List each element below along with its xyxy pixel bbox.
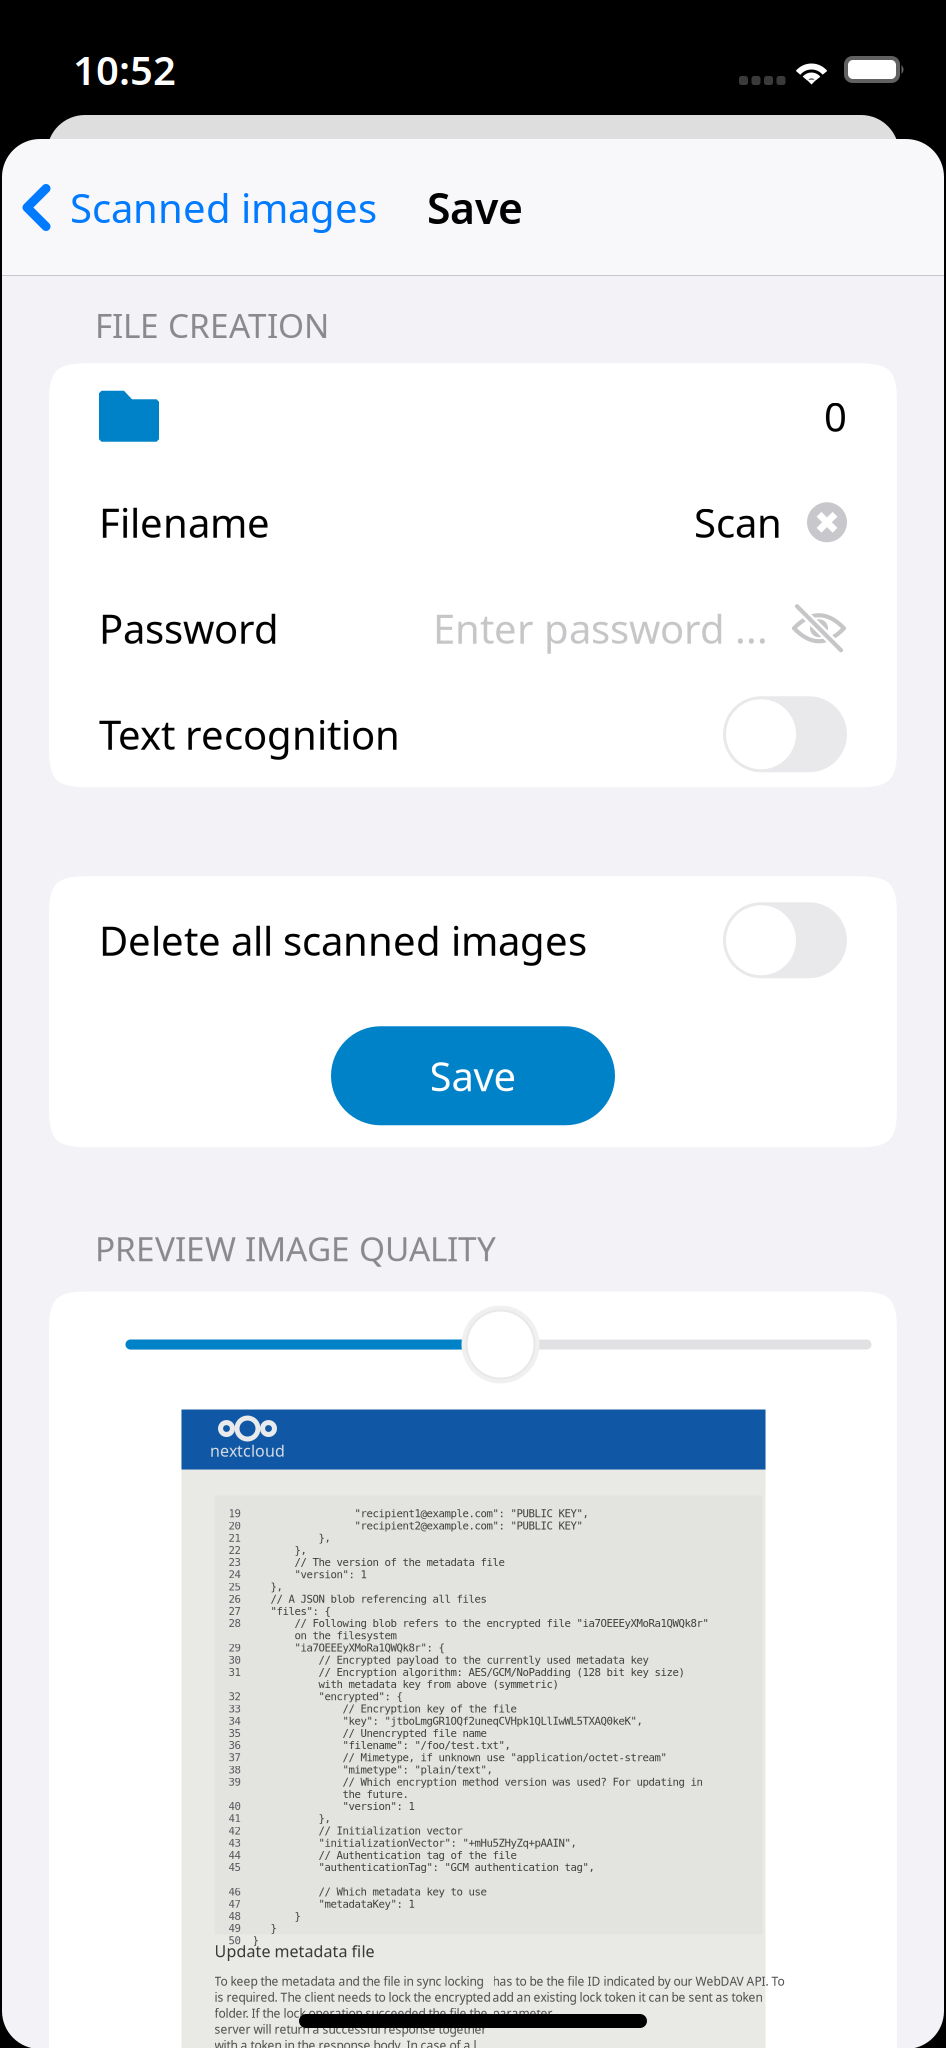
staticText: "recipient1@example.com": "PUBLIC KEY", <box>252 1508 588 1520</box>
staticText: "encrypted": { <box>252 1691 402 1703</box>
staticText: 19 <box>228 1508 240 1520</box>
staticText: 35 <box>228 1727 240 1739</box>
staticText: Delete all scanned images <box>99 914 587 967</box>
staticText: Save <box>427 179 523 236</box>
staticText: To keep the metadata and the file in syn… <box>214 1973 483 1989</box>
staticText: // Initialization vector <box>252 1825 462 1837</box>
staticText: 39 <box>228 1776 240 1788</box>
staticText: FILE CREATION <box>95 303 329 347</box>
staticText: 48 <box>228 1910 240 1922</box>
staticText: }, <box>252 1581 282 1593</box>
staticText: // Encryption algorithm: AES/GCM/NoPaddi… <box>252 1666 684 1678</box>
staticText: "files": { <box>252 1605 330 1617</box>
staticText: 50 <box>228 1935 240 1947</box>
staticText: PREVIEW IMAGE QUALITY <box>95 1226 496 1271</box>
staticText: } <box>252 1922 276 1934</box>
staticText: 25 <box>228 1581 240 1593</box>
staticText: "mimetype": "plain/text", <box>252 1764 492 1776</box>
staticText: 40 <box>228 1800 240 1812</box>
staticText: }, <box>252 1544 306 1556</box>
staticText: 28 <box>228 1617 240 1629</box>
staticText: has to be the file ID indicated by our W… <box>492 1973 784 1989</box>
staticText: "version": 1 <box>252 1569 366 1581</box>
staticText: with a token in the response body. In ca… <box>214 2037 490 2048</box>
staticText: Save <box>429 1049 516 1102</box>
staticText: 46 <box>228 1886 240 1898</box>
staticText: 0 <box>824 390 847 443</box>
staticText: // Which encryption method version was u… <box>252 1776 702 1788</box>
staticText: "metadataKey": 1 <box>252 1898 414 1910</box>
staticText: "version": 1 <box>252 1800 414 1812</box>
button[interactable]: Toggle <box>723 902 847 978</box>
staticText: the future. <box>252 1788 408 1800</box>
staticText: 23 <box>228 1556 240 1568</box>
staticText: "authenticationTag": "GCM authentication… <box>252 1861 594 1873</box>
staticText: } <box>252 1910 300 1922</box>
staticText: add an existing lock token it can be sen… <box>492 1989 762 2005</box>
staticText: 47 <box>228 1898 240 1910</box>
staticText: nextcloud <box>210 1440 285 1461</box>
button[interactable]: Save <box>331 1026 615 1125</box>
staticText: // Unencrypted file name <box>252 1727 486 1739</box>
staticText: "filename": "/foo/test.txt", <box>252 1739 510 1751</box>
staticText: 32 <box>228 1691 240 1703</box>
staticText: 10:52 <box>73 43 176 96</box>
staticText: // Authentication tag of the file <box>252 1849 516 1861</box>
staticText: 49 <box>228 1922 240 1934</box>
staticText: with metadata key from above (symmetric) <box>252 1678 558 1690</box>
staticText: Scanned images <box>70 181 377 234</box>
staticText: // The version of the metadata file <box>252 1556 504 1568</box>
staticText: 44 <box>228 1849 240 1861</box>
staticText: 26 <box>228 1593 240 1605</box>
staticText: Text recognition <box>99 708 400 761</box>
staticText: 30 <box>228 1654 240 1666</box>
button[interactable]: Toggle <box>723 696 847 772</box>
staticText: 34 <box>228 1715 240 1727</box>
button[interactable]: Scanned images <box>0 167 427 247</box>
staticText: 37 <box>228 1752 240 1764</box>
staticText: Scan <box>694 496 782 549</box>
staticText: 22 <box>228 1544 240 1556</box>
staticText: } <box>252 1935 258 1947</box>
staticText: "ia7OEEEyXMoRa1QWQk8r": { <box>252 1642 444 1654</box>
staticText: }, <box>252 1813 330 1825</box>
staticText: 42 <box>228 1825 240 1837</box>
staticText: "recipient2@example.com": "PUBLIC KEY" <box>252 1520 582 1532</box>
staticText: // Following blob refers to the encrypte… <box>252 1617 708 1629</box>
staticText: server will return a successful response… <box>214 2021 486 2037</box>
staticText: 24 <box>228 1569 240 1581</box>
staticText: 31 <box>228 1666 240 1678</box>
staticText: 33 <box>228 1703 240 1715</box>
staticText: // A JSON blob referencing all files <box>252 1593 486 1605</box>
staticText: // Mimetype, if unknown use "application… <box>252 1752 666 1764</box>
staticText: Update metadata file <box>214 1940 374 1962</box>
staticText: 38 <box>228 1764 240 1776</box>
staticText: 41 <box>228 1813 240 1825</box>
staticText: }, <box>252 1532 330 1544</box>
staticText: 21 <box>228 1532 240 1544</box>
staticText: 29 <box>228 1642 240 1654</box>
staticText: 27 <box>228 1605 240 1617</box>
staticText: 20 <box>228 1520 240 1532</box>
staticText: on the filesystem <box>252 1630 396 1642</box>
staticText: is required. The client needs to lock th… <box>214 1989 490 2005</box>
staticText: 43 <box>228 1837 240 1849</box>
staticText: // Which metadata key to use <box>252 1886 486 1898</box>
staticText: Enter password ... <box>433 602 768 655</box>
staticText: 45 <box>228 1861 240 1873</box>
staticText: Filename <box>99 496 270 549</box>
staticText: 36 <box>228 1739 240 1751</box>
staticText: folder. If the lock operation succeeded … <box>214 2005 487 2021</box>
staticText: Password <box>99 602 279 655</box>
staticText: // Encrypted payload to the currently us… <box>252 1654 648 1666</box>
staticText: "initializationVector": "+mHu5ZHyZq+pAAI… <box>252 1837 576 1849</box>
staticText: parameter. <box>492 2005 553 2021</box>
staticText: "key": "jtboLmgGR1OQf2uneqCVHpk1QLlIwWL5… <box>252 1715 642 1727</box>
staticText: // Encryption key of the file <box>252 1703 516 1715</box>
